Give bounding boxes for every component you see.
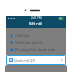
staticText: Quét mã QR	[14, 58, 35, 63]
other: Mở	[60, 58, 64, 62]
staticText: Kết nối	[29, 21, 43, 26]
button[interactable]: Thiết lập	[6, 32, 66, 39]
button[interactable]: Tài khoản của tôi	[6, 39, 66, 46]
button[interactable]: Phương thức thanh toán	[6, 46, 66, 53]
staticText: Phương thức thanh toán	[15, 47, 56, 52]
staticText: 2:41 PM	[31, 16, 42, 20]
staticText: Tài khoản của tôi	[15, 40, 43, 45]
staticText: Thiết lập	[15, 33, 30, 38]
button[interactable]: Quét mã QR	[6, 55, 66, 65]
